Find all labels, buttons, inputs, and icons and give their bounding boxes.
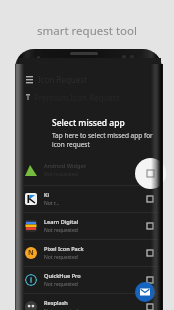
button[interactable]: QuickHue Pro (19, 267, 161, 293)
other: Select Learn Digital (147, 223, 153, 229)
button[interactable]: Open navigation menu (19, 70, 161, 88)
staticText: Android Widget (44, 164, 86, 170)
staticText: Not requested (44, 254, 78, 261)
staticText: Not requested (44, 308, 78, 310)
other: Select Pixel Icon Pack (147, 250, 153, 256)
staticText: Tap here to select missed app for icon r… (52, 131, 160, 149)
staticText: Select missed app (52, 117, 125, 129)
staticText: Not requested (44, 281, 78, 288)
staticText: QuickHue Pro (44, 272, 81, 280)
staticText: Pixel Icon Pack (44, 245, 84, 253)
staticText: Ki (44, 191, 50, 199)
button[interactable]: N (19, 240, 161, 266)
staticText: Not requested (44, 227, 78, 234)
button[interactable]: Learn Digital (19, 213, 161, 239)
button[interactable]: Filter (19, 88, 161, 106)
staticText: Resplash (44, 299, 68, 307)
staticText: Learn Digital (44, 218, 79, 226)
button[interactable]: Select missed app (135, 158, 166, 189)
other: Filter (26, 94, 30, 100)
other: Select Resplash (147, 304, 153, 310)
staticText: Icon Request (38, 74, 87, 85)
button[interactable]: Ki (19, 186, 161, 212)
staticText: Not requested (44, 171, 78, 178)
button[interactable]: Resplash (19, 294, 161, 310)
staticText: smart request tool (37, 23, 137, 39)
other: Open navigation menu (26, 76, 33, 83)
staticText: Not r… (44, 200, 60, 207)
other: Select Ki (147, 196, 153, 202)
other: Select QuickHue Pro (147, 277, 153, 283)
staticText: N (28, 248, 34, 258)
button[interactable]: Android Widget (19, 164, 161, 180)
button[interactable]: Send icon request (135, 282, 155, 302)
